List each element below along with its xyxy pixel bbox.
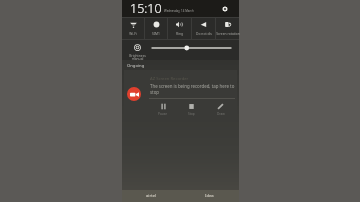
button[interactable]: Draw xyxy=(206,99,235,118)
staticText: Do not dis xyxy=(196,31,212,35)
staticText: Screen rotation xyxy=(216,31,240,35)
staticText: Stop xyxy=(188,112,195,116)
button[interactable]: Pause xyxy=(149,99,177,118)
button[interactable]: Do not dis xyxy=(192,17,215,40)
staticText: The screen is being recorded, tap here t… xyxy=(150,83,235,95)
button[interactable]: Screen rotation xyxy=(216,17,239,40)
staticText: Ring xyxy=(176,31,183,35)
staticText: 15:10 xyxy=(130,0,162,17)
button[interactable]: SIM1 xyxy=(145,17,167,40)
staticText: SIM1 xyxy=(152,31,160,35)
staticText: Pause xyxy=(158,112,168,116)
button[interactable]: Ring xyxy=(168,17,191,40)
staticText: Wi-Fi xyxy=(129,31,137,35)
button[interactable]: Wi-Fi xyxy=(122,17,144,40)
staticText: airtel xyxy=(146,193,157,199)
staticText: AZ Screen Recorder xyxy=(150,76,189,82)
button[interactable]: AZ Screen Recorder xyxy=(124,70,237,118)
staticText: Idea xyxy=(205,193,214,199)
button[interactable]: Settings xyxy=(219,3,230,14)
staticText: Ongoing xyxy=(127,63,145,69)
staticText: Brightness manual xyxy=(129,53,146,60)
button[interactable]: Stop xyxy=(177,99,206,118)
staticText: Wednesday, 14 March xyxy=(164,9,194,13)
button[interactable]: Brightness manual xyxy=(122,40,152,60)
staticText: Draw xyxy=(217,112,225,116)
